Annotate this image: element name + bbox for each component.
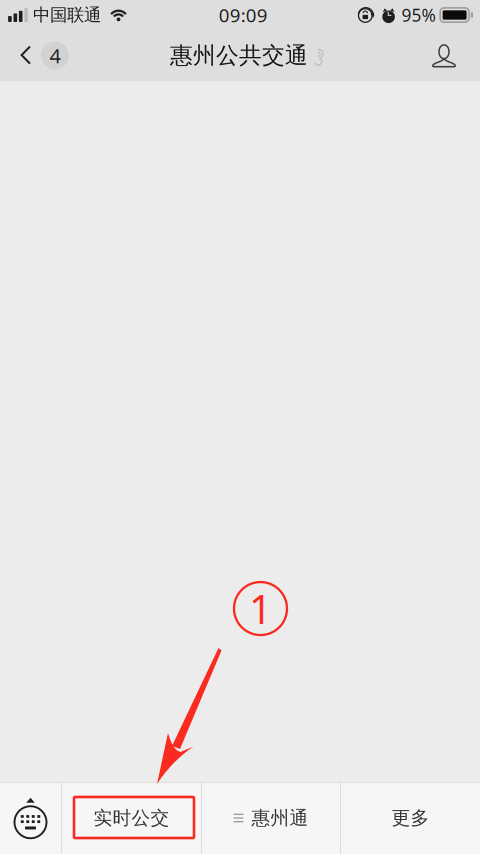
staticText: 95% (402, 3, 436, 26)
button[interactable]: Profile (418, 30, 470, 80)
staticText: 1 (249, 582, 272, 635)
staticText: 惠州公共交通 (170, 42, 308, 69)
staticText: 惠州通 (251, 806, 308, 829)
button[interactable]: 更多 (341, 782, 480, 854)
staticText: 4 (49, 42, 60, 69)
button[interactable]: Keyboard (0, 782, 61, 854)
staticText: 实时公交 (93, 806, 169, 829)
button[interactable]: 惠州通 (202, 782, 340, 854)
staticText: 更多 (391, 806, 429, 829)
button[interactable]: Back (0, 30, 81, 80)
staticText: 中国联通 (33, 4, 101, 26)
staticText: 09:09 (219, 3, 268, 27)
button[interactable]: 实时公交 (62, 782, 201, 854)
